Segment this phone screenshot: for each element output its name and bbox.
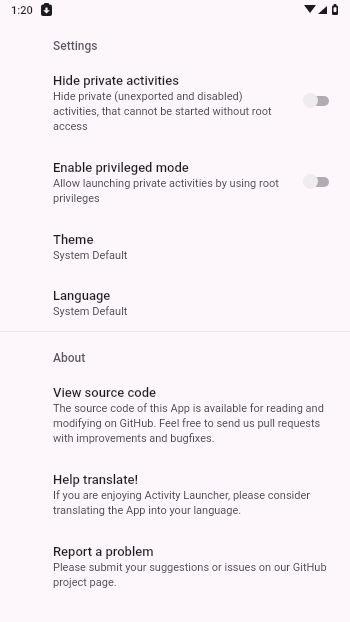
staticText: If you are enjoying Activity Launcher, p… — [53, 489, 331, 517]
button[interactable]: Enable privileged mode — [0, 141, 350, 213]
staticText: The source code of this App is available… — [53, 402, 331, 445]
staticText: Help translate! — [53, 472, 138, 487]
button[interactable]: Toggle Enable privileged mode — [299, 170, 333, 193]
staticText: System Default — [53, 305, 128, 318]
button[interactable]: Help translate! — [0, 453, 350, 525]
staticText: Language — [53, 288, 111, 303]
staticText: Please submit your suggestions or issues… — [53, 561, 331, 589]
staticText: View source code — [53, 385, 156, 400]
staticText: Theme — [53, 232, 94, 247]
button[interactable]: View source code — [0, 367, 350, 453]
other: Notification — [41, 3, 52, 16]
staticText: Hide private activities — [53, 73, 179, 88]
staticText: Allow launching private activities by us… — [53, 177, 285, 205]
button[interactable]: Theme — [0, 213, 350, 270]
staticText: Hide private (unexported and disabled) a… — [53, 90, 285, 133]
staticText: System Default — [53, 249, 128, 262]
button[interactable]: Hide private activities — [0, 55, 350, 141]
staticText: Report a problem — [53, 544, 154, 559]
staticText: Settings — [53, 39, 98, 53]
staticText: About — [53, 351, 86, 365]
button[interactable]: Language — [0, 270, 350, 331]
staticText: 1:20 — [11, 4, 33, 17]
button[interactable]: Report a problem — [0, 525, 350, 597]
staticText: Enable privileged mode — [53, 160, 189, 175]
button[interactable]: Toggle Hide private activities — [299, 89, 333, 112]
